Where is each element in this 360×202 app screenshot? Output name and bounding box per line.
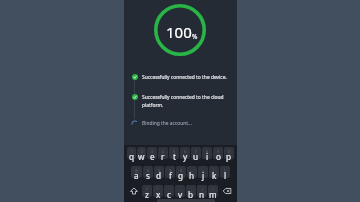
staticText: + [202, 168, 204, 173]
staticText: g [178, 170, 184, 181]
button[interactable]: # [143, 166, 153, 178]
staticText: 3 [151, 149, 153, 154]
button[interactable]: Binding the account... [130, 118, 237, 128]
staticText: p [226, 151, 232, 162]
button[interactable]: * [142, 185, 152, 197]
staticText: 2 [141, 149, 143, 154]
button[interactable]: 3 [147, 147, 157, 159]
button[interactable]: 2 [137, 147, 146, 159]
button[interactable]: Successfully connected to the device. [130, 72, 237, 82]
staticText: Successfully connected to the device. [142, 74, 227, 81]
button[interactable]: ) [220, 166, 230, 178]
staticText: Binding the account... [142, 120, 192, 127]
staticText: ' [169, 187, 170, 192]
button[interactable]: 6 [180, 147, 190, 159]
staticText: w [138, 151, 145, 162]
button[interactable]: ? [208, 185, 218, 197]
staticText: $ [158, 168, 160, 173]
button[interactable]: Backspace [219, 185, 234, 197]
button[interactable]: 0 [224, 147, 234, 159]
staticText: 8 [206, 149, 208, 154]
staticText: y [183, 151, 188, 162]
staticText: u [193, 151, 199, 162]
staticText: m [209, 189, 217, 200]
staticText: h [189, 170, 195, 181]
staticText: 4 [162, 149, 164, 154]
button[interactable]: 7 [191, 147, 201, 159]
staticText: # [147, 168, 150, 173]
staticText: Successfully connected to the cloud plat… [142, 94, 237, 108]
button[interactable]: " [153, 185, 163, 197]
staticText: f [169, 170, 172, 181]
staticText: & [180, 168, 183, 173]
staticText: e [150, 151, 155, 162]
staticText: k [212, 170, 217, 181]
staticText: ! [202, 187, 203, 192]
button[interactable]: 5 [169, 147, 179, 159]
button[interactable]: + [198, 166, 208, 178]
staticText: j [202, 170, 205, 181]
staticText: x [156, 189, 161, 200]
staticText: l [224, 170, 227, 181]
button[interactable]: 9 [213, 147, 223, 159]
staticText: z [145, 189, 149, 200]
button[interactable]: & [176, 166, 186, 178]
button[interactable]: ( [209, 166, 219, 178]
staticText: b [188, 189, 194, 200]
staticText: - [191, 168, 193, 173]
staticText: : [180, 187, 181, 192]
staticText: 6 [184, 149, 186, 154]
staticText: ( [213, 168, 215, 173]
staticText: * [146, 187, 148, 192]
staticText: 1 [131, 149, 133, 154]
button[interactable]: % [165, 166, 175, 178]
button[interactable]: 1 [127, 147, 136, 159]
button[interactable]: @ [131, 166, 142, 178]
staticText: a [134, 170, 139, 181]
button[interactable]: 8 [202, 147, 212, 159]
staticText: v [178, 189, 183, 200]
staticText: 7 [195, 149, 197, 154]
staticText: 9 [217, 149, 219, 154]
staticText: d [156, 170, 162, 181]
staticText: s [146, 170, 150, 181]
staticText: 5 [173, 149, 175, 154]
button[interactable]: ' [164, 185, 174, 197]
staticText: o [216, 151, 221, 162]
staticText: ? [212, 187, 214, 192]
staticText: i [206, 151, 209, 162]
staticText: q [129, 151, 135, 162]
staticText: % [192, 32, 198, 41]
staticText: ) [224, 168, 226, 173]
staticText: n [199, 189, 205, 200]
staticText: ; [191, 187, 192, 192]
button[interactable]: ! [197, 185, 207, 197]
staticText: @ [135, 168, 139, 173]
staticText: % [169, 168, 172, 173]
button[interactable]: 4 [158, 147, 168, 159]
staticText: " [157, 187, 159, 192]
button[interactable]: : [175, 185, 185, 197]
staticText: c [167, 189, 171, 200]
staticText: r [161, 151, 165, 162]
staticText: t [173, 151, 176, 162]
staticText: 100 [166, 22, 192, 42]
button[interactable]: $ [154, 166, 164, 178]
button[interactable]: Successfully connected to the cloud plat… [130, 92, 237, 106]
staticText: 0 [228, 149, 230, 154]
button[interactable]: ; [186, 185, 196, 197]
button[interactable]: - [187, 166, 197, 178]
button[interactable]: Shift [127, 185, 141, 197]
